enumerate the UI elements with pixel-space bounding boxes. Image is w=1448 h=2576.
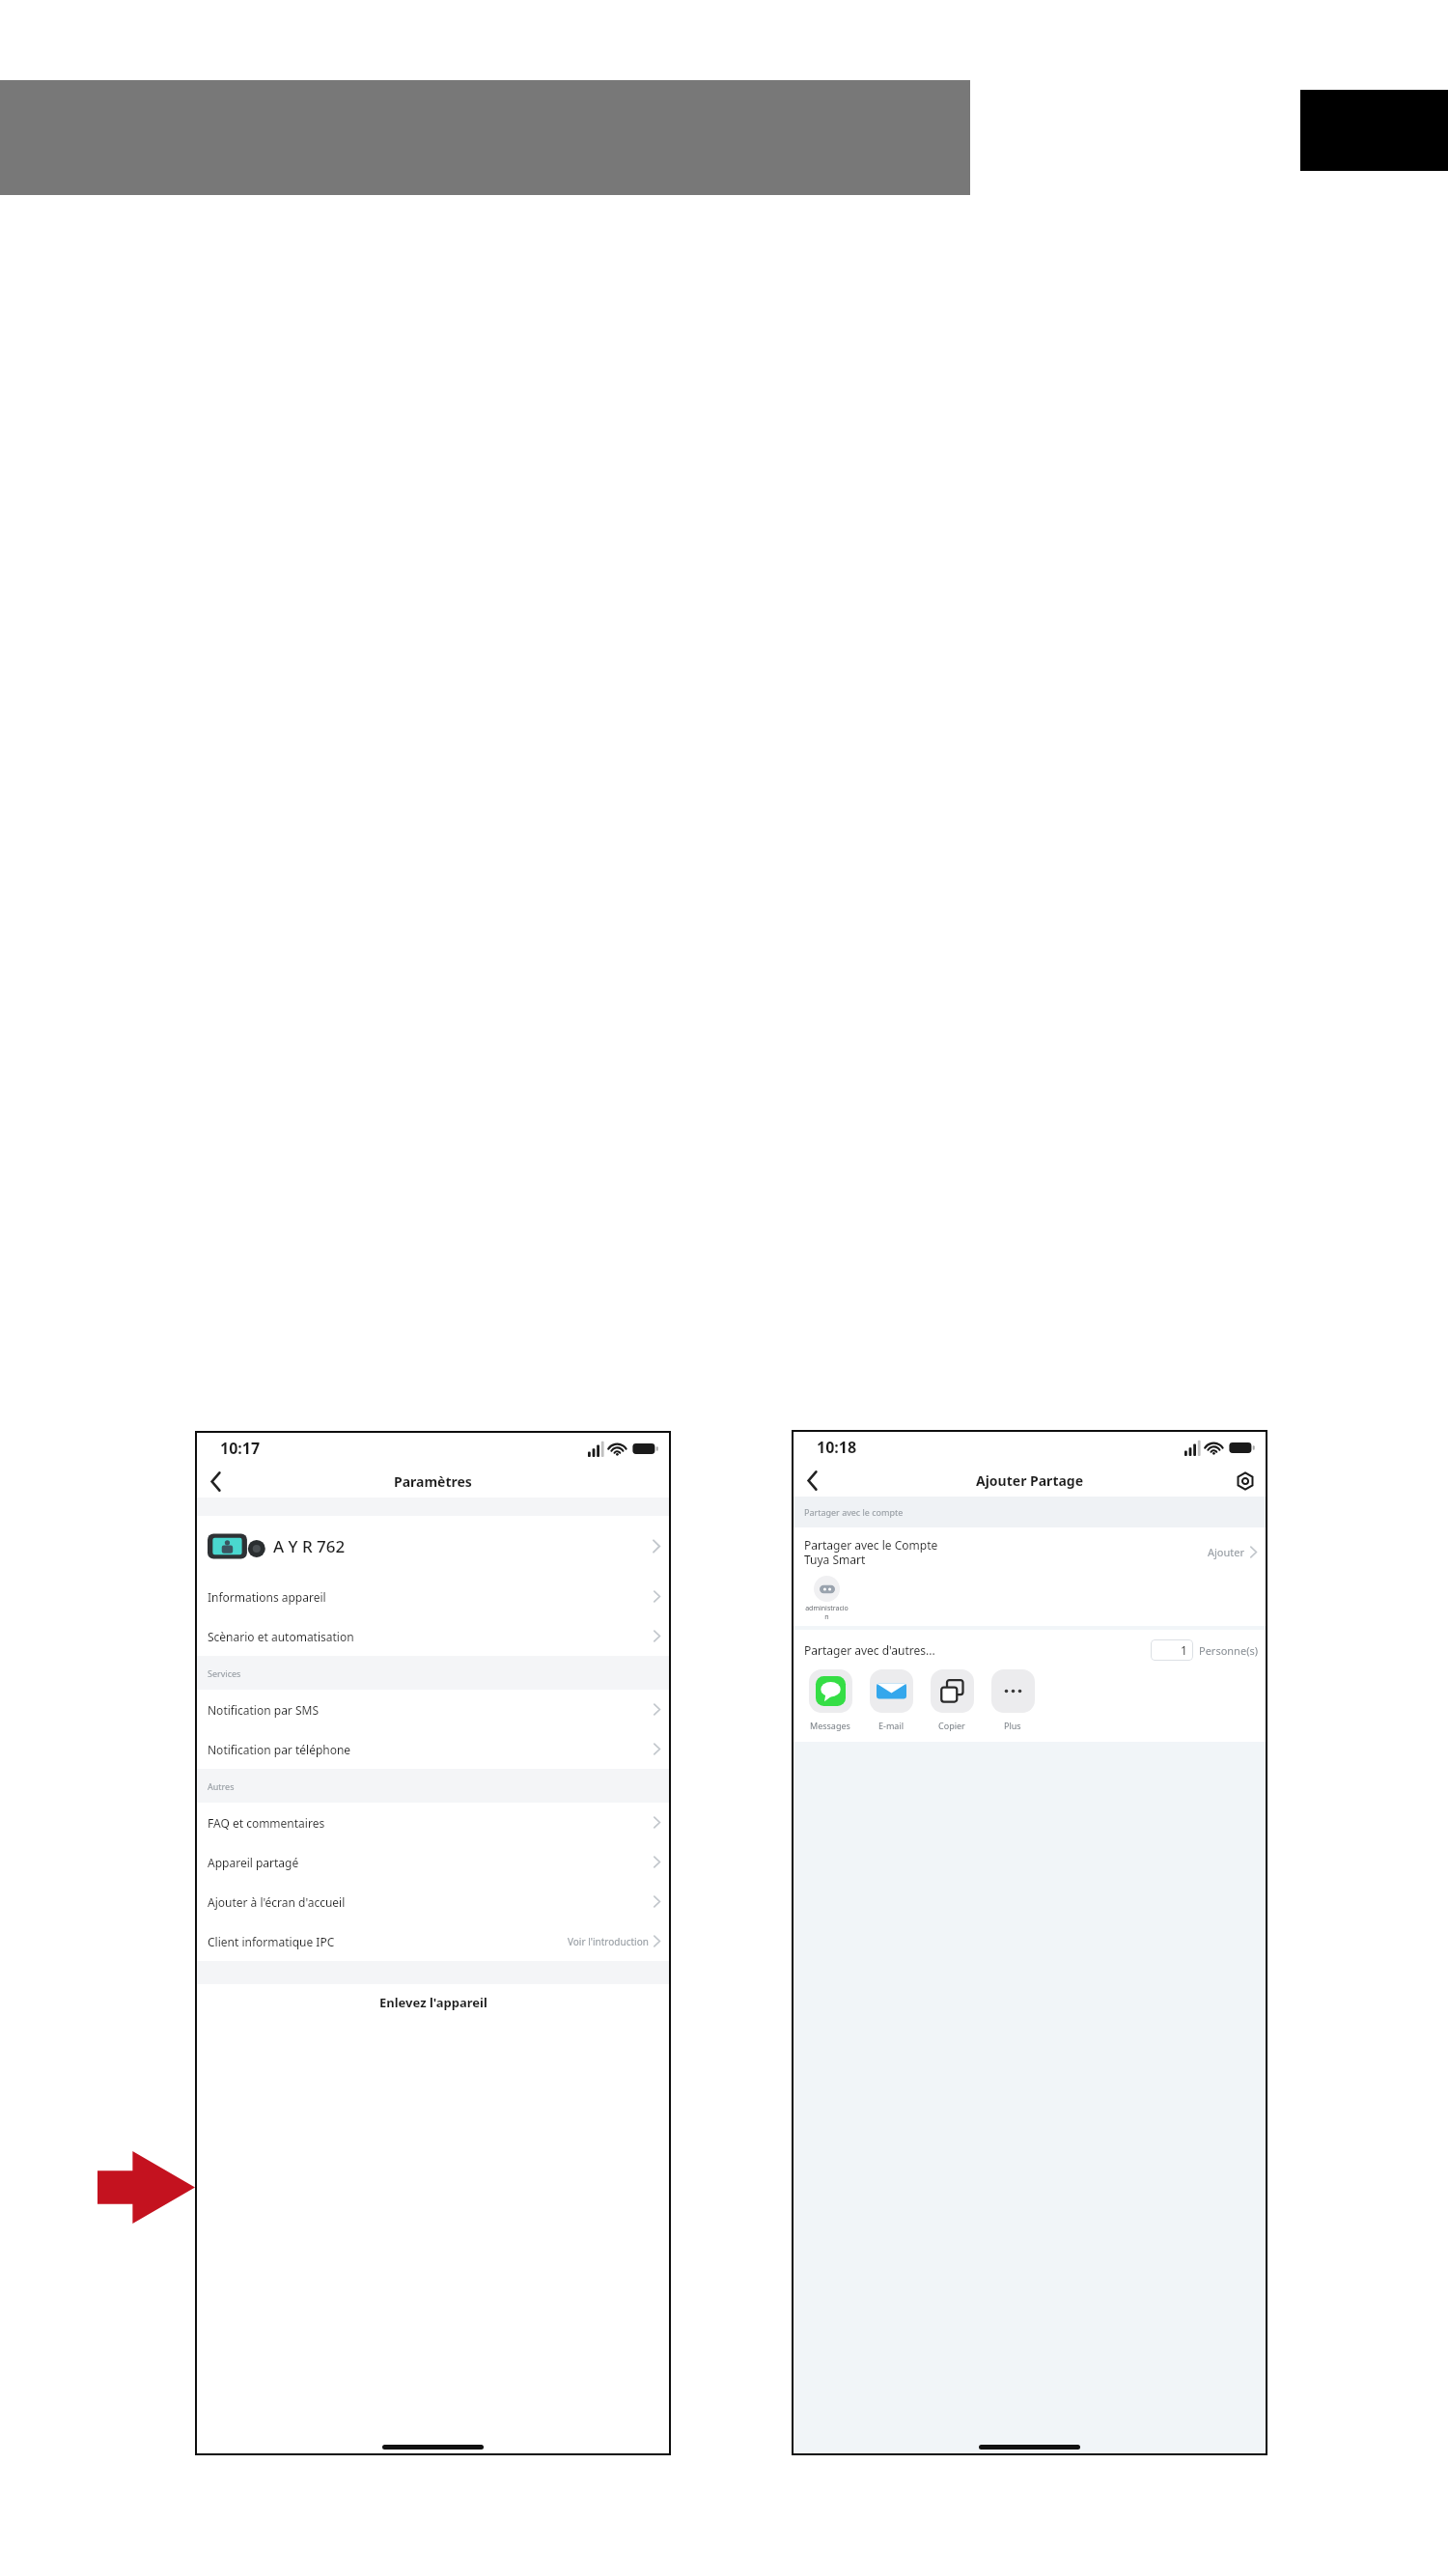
- staticText: Client informatique IPC: [208, 1934, 335, 1949]
- button[interactable]: Back: [203, 1469, 229, 1495]
- button[interactable]: Notification par téléphone: [195, 1729, 671, 1769]
- staticText: Messages: [810, 1720, 850, 1731]
- staticText: Ajouter à l'écran d'accueil: [208, 1894, 346, 1910]
- staticText: A Y R 762: [273, 1535, 346, 1557]
- staticText: 10:18: [817, 1437, 857, 1458]
- staticText: Informations appareil: [208, 1589, 326, 1605]
- button[interactable]: Settings: [1232, 1468, 1258, 1494]
- button[interactable]: Informations appareil: [195, 1577, 671, 1616]
- staticText: Autres: [208, 1780, 235, 1792]
- staticText: Appareil partagé: [208, 1855, 299, 1870]
- staticText: administracio n: [805, 1604, 849, 1621]
- staticText: Copier: [938, 1720, 965, 1731]
- staticText: Voir l'introduction: [568, 1935, 649, 1948]
- staticText: Paramètres: [394, 1472, 472, 1491]
- staticText: Personne(s): [1199, 1643, 1258, 1658]
- button[interactable]: Back: [799, 1468, 825, 1494]
- staticText: Partager avec le compte: [804, 1506, 904, 1518]
- button[interactable]: Copier: [923, 1669, 981, 1731]
- staticText: Notification par SMS: [208, 1702, 319, 1718]
- button[interactable]: Plus: [984, 1669, 1042, 1731]
- button[interactable]: Notification par SMS: [195, 1690, 671, 1729]
- staticText: Plus: [1004, 1720, 1021, 1731]
- button[interactable]: E-mail: [862, 1669, 920, 1731]
- button[interactable]: Messages: [801, 1669, 859, 1731]
- button[interactable]: FAQ et commentaires: [195, 1803, 671, 1842]
- button[interactable]: Appareil partagé: [195, 1842, 671, 1882]
- button[interactable]: A Y R 762: [195, 1516, 671, 1577]
- staticText: Notification par téléphone: [208, 1742, 351, 1757]
- button[interactable]: Client informatique IPC: [195, 1921, 671, 1961]
- staticText: Ajouter Partage: [976, 1471, 1084, 1490]
- staticText: E-mail: [878, 1720, 905, 1731]
- staticText: Partager avec le Compte Tuya Smart: [804, 1537, 938, 1567]
- staticText: Enlevez l'appareil: [379, 1994, 487, 2011]
- button[interactable]: Partager avec le Compte Tuya Smart: [792, 1527, 1267, 1576]
- staticText: Partager avec d'autres...: [804, 1642, 935, 1658]
- button[interactable]: 1: [1151, 1639, 1193, 1661]
- button[interactable]: Enlevez l'appareil: [379, 1994, 487, 2011]
- staticText: 1: [1181, 1642, 1187, 1658]
- button[interactable]: Ajouter à l'écran d'accueil: [195, 1882, 671, 1921]
- staticText: Ajouter: [1208, 1545, 1245, 1559]
- staticText: FAQ et commentaires: [208, 1815, 325, 1831]
- staticText: 10:17: [220, 1438, 261, 1459]
- button[interactable]: Scènario et automatisation: [195, 1616, 671, 1656]
- staticText: Scènario et automatisation: [208, 1629, 354, 1644]
- staticText: Services: [208, 1667, 241, 1679]
